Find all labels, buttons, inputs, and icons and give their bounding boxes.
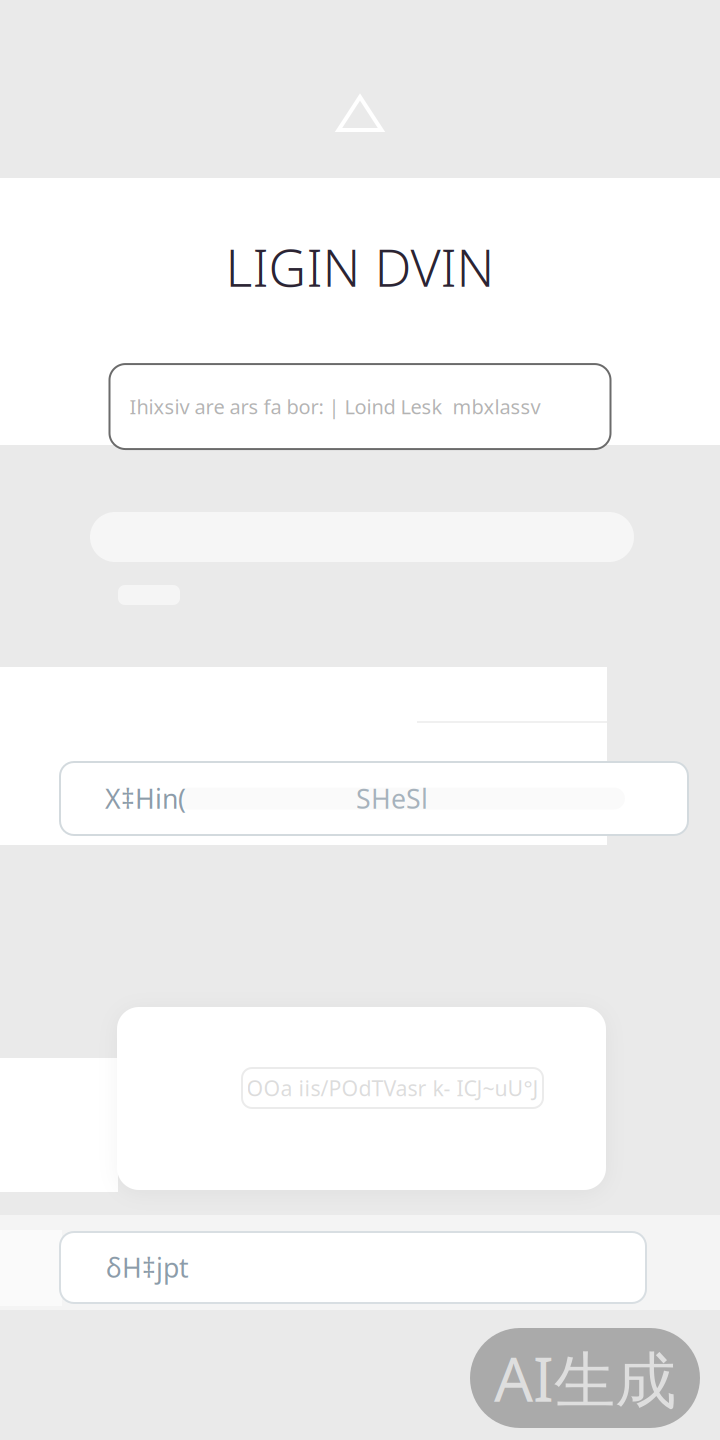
staticText: LIGIN DVIN	[225, 232, 494, 301]
staticText: δH‡jpt	[106, 1250, 189, 1285]
staticText: AI生成	[494, 1337, 676, 1419]
button[interactable]: Ihixsiv are ars fa bor: | Loind Lesk mbx…	[109, 364, 610, 449]
button[interactable]: δH‡jpt	[60, 1232, 646, 1303]
button[interactable]: OOa iis/POdTVasr k- ICJ~uU°J	[242, 1068, 543, 1108]
staticText: SHeSl	[356, 781, 428, 816]
button[interactable]: X‡Hin(	[60, 762, 688, 835]
staticText: Ihixsiv are ars fa bor: | Loind Lesk mbx…	[129, 393, 540, 420]
staticText: X‡Hin(	[105, 781, 186, 816]
staticText: OOa iis/POdTVasr k- ICJ~uU°J	[246, 1074, 538, 1102]
